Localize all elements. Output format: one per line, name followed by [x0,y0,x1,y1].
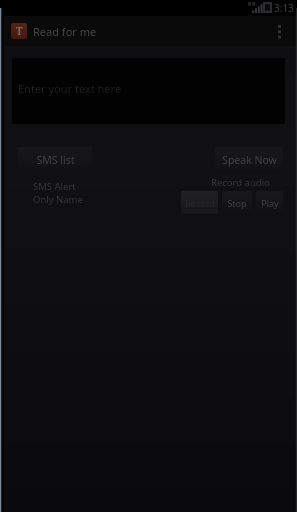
staticText: Only Name [33,193,83,206]
staticText: 3:13 [274,1,294,15]
staticText: Record audio [211,176,270,189]
staticText: Stop [227,197,247,209]
staticText: SMS list [36,153,75,167]
button[interactable]: SMS list [18,147,92,172]
button[interactable]: Record [181,191,218,214]
staticText: Read for me [33,24,97,39]
button[interactable]: Play [256,191,283,214]
button[interactable]: Stop [222,191,252,214]
staticText: Record [185,197,215,209]
staticText: T [16,24,23,38]
button[interactable]: Speak Now [215,147,283,173]
staticText: Play [261,197,279,209]
button[interactable]: More options [261,16,297,46]
staticText: SMS Alert [33,180,76,193]
staticText: Speak Now [222,153,277,167]
staticText: Enter your text here [18,81,122,96]
